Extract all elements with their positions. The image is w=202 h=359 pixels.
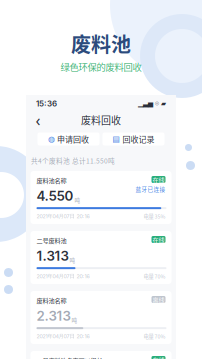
- staticText: 回收记录: [122, 133, 154, 145]
- staticText: 吨: [69, 256, 75, 264]
- button[interactable]: ◍: [37, 132, 99, 145]
- staticText: 2.313: [36, 308, 70, 324]
- staticText: 2021年04月07日 20:16: [36, 333, 89, 339]
- staticText: 绿色环保的废料回收: [60, 60, 141, 73]
- staticText: 废料池: [71, 29, 131, 58]
- staticText: 在线: [152, 355, 164, 359]
- staticText: 吨: [74, 196, 80, 204]
- staticText: 15:36: [36, 99, 57, 108]
- staticText: 废料池名称: [36, 296, 66, 305]
- staticText: 蓝牙已连接: [135, 185, 165, 193]
- button[interactable]: ▤: [102, 132, 164, 145]
- button[interactable]: 二号废料池: [30, 231, 171, 284]
- button[interactable]: 二号废料池名字可以很长: [30, 351, 171, 359]
- staticText: 二号废料池名字可以很长: [36, 356, 102, 359]
- button[interactable]: 废料池名称: [30, 171, 171, 224]
- button[interactable]: 返回: [31, 113, 45, 127]
- staticText: 离线: [152, 295, 164, 304]
- staticText: ▤: [112, 134, 120, 144]
- staticText: 废料回收: [81, 113, 121, 127]
- staticText: 二号废料池: [36, 236, 66, 245]
- staticText: 申请回收: [57, 133, 89, 145]
- staticText: ▁▃▅ ⌾ ▰: [138, 100, 166, 107]
- staticText: 电量 70%: [143, 272, 165, 280]
- staticText: 在线: [152, 175, 164, 184]
- staticText: 4.550: [36, 188, 73, 204]
- button[interactable]: 废料池名称: [30, 291, 171, 344]
- staticText: 吨: [71, 316, 77, 324]
- staticText: 2021年04月07日 20:16: [36, 273, 89, 279]
- staticText: 2021年04月07日 20:16: [36, 213, 89, 219]
- staticText: ◍: [48, 134, 55, 144]
- staticText: ‹: [35, 109, 40, 131]
- staticText: 电量 35%: [143, 212, 165, 220]
- staticText: 1.313: [36, 248, 68, 264]
- staticText: 废料池名称: [36, 176, 66, 185]
- staticText: 共4个废料池 总计11.550吨: [31, 156, 115, 165]
- staticText: 在线: [152, 235, 164, 244]
- staticText: 电量 70%: [143, 332, 165, 340]
